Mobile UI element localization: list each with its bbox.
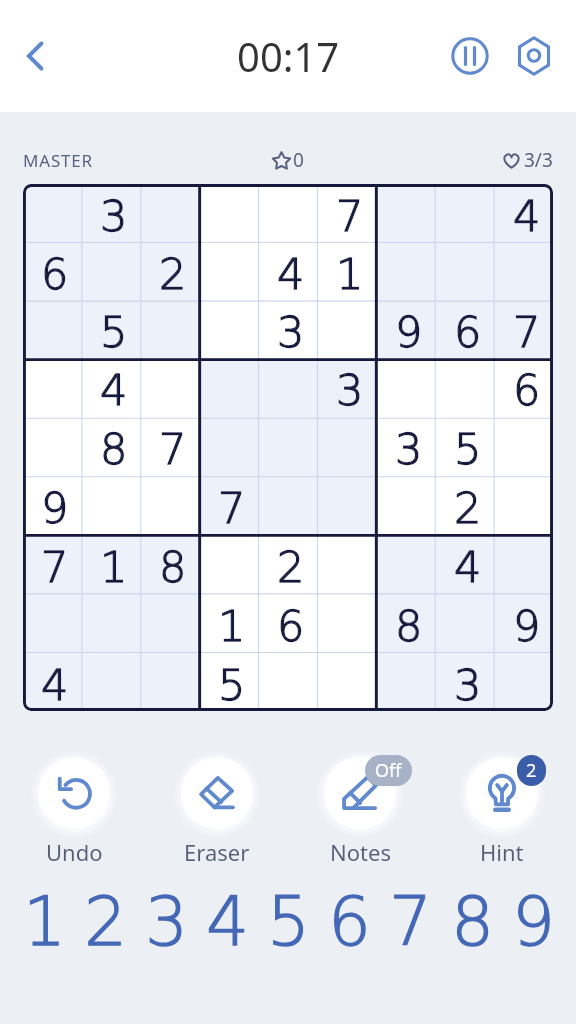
- button[interactable]: 7: [199, 475, 258, 534]
- button[interactable]: [81, 242, 140, 300]
- button[interactable]: [81, 593, 140, 652]
- button[interactable]: Back: [7, 28, 63, 84]
- button[interactable]: [140, 593, 199, 652]
- button[interactable]: 5: [435, 416, 494, 475]
- button[interactable]: [23, 416, 81, 475]
- button[interactable]: 6: [494, 358, 553, 416]
- staticText: 5: [454, 424, 482, 474]
- button[interactable]: 3: [435, 652, 494, 711]
- button[interactable]: 4: [197, 880, 257, 964]
- button[interactable]: [317, 475, 376, 534]
- button[interactable]: 8: [442, 880, 502, 964]
- button[interactable]: [494, 534, 553, 593]
- button[interactable]: [199, 184, 258, 242]
- button[interactable]: [376, 358, 435, 416]
- button[interactable]: [376, 534, 435, 593]
- button[interactable]: 2: [435, 475, 494, 534]
- button[interactable]: [140, 652, 199, 711]
- button[interactable]: 1: [81, 534, 140, 593]
- button[interactable]: 7: [317, 184, 376, 242]
- button[interactable]: [258, 358, 317, 416]
- button[interactable]: Eraser: [162, 755, 272, 867]
- button[interactable]: [435, 184, 494, 242]
- button[interactable]: 6: [23, 242, 81, 300]
- button[interactable]: Undo: [19, 755, 129, 867]
- button[interactable]: [435, 242, 494, 300]
- button[interactable]: 9: [503, 880, 563, 964]
- button[interactable]: [23, 593, 81, 652]
- button[interactable]: 9: [376, 300, 435, 358]
- button[interactable]: Pause: [445, 31, 495, 81]
- button[interactable]: 4: [81, 358, 140, 416]
- button[interactable]: [494, 242, 553, 300]
- button[interactable]: 7: [380, 880, 440, 964]
- button[interactable]: 4: [23, 652, 81, 711]
- button[interactable]: 3: [376, 416, 435, 475]
- button[interactable]: 5: [199, 652, 258, 711]
- button[interactable]: 6: [319, 880, 379, 964]
- button[interactable]: 5: [258, 880, 318, 964]
- button[interactable]: [258, 416, 317, 475]
- button[interactable]: 1: [317, 242, 376, 300]
- button[interactable]: [23, 300, 81, 358]
- button[interactable]: [140, 184, 199, 242]
- staticText: 2: [277, 542, 305, 592]
- button[interactable]: [140, 358, 199, 416]
- button[interactable]: Off: [305, 755, 415, 867]
- button[interactable]: [23, 184, 81, 242]
- button[interactable]: 4: [258, 242, 317, 300]
- button[interactable]: 2: [258, 534, 317, 593]
- button[interactable]: 6: [258, 593, 317, 652]
- button[interactable]: 9: [494, 593, 553, 652]
- button[interactable]: [199, 300, 258, 358]
- button[interactable]: [199, 358, 258, 416]
- button[interactable]: 6: [435, 300, 494, 358]
- button[interactable]: 8: [81, 416, 140, 475]
- button[interactable]: [258, 652, 317, 711]
- button[interactable]: [317, 593, 376, 652]
- button[interactable]: [494, 416, 553, 475]
- button[interactable]: [81, 652, 140, 711]
- staticText: 3: [395, 424, 423, 474]
- button[interactable]: [376, 184, 435, 242]
- button[interactable]: 1: [199, 593, 258, 652]
- button[interactable]: 7: [140, 416, 199, 475]
- button[interactable]: [376, 475, 435, 534]
- button[interactable]: 3: [258, 300, 317, 358]
- button[interactable]: 3: [81, 184, 140, 242]
- button[interactable]: [199, 416, 258, 475]
- button[interactable]: [376, 652, 435, 711]
- button[interactable]: 8: [140, 534, 199, 593]
- button[interactable]: 8: [376, 593, 435, 652]
- button[interactable]: 7: [494, 300, 553, 358]
- button[interactable]: [258, 184, 317, 242]
- button[interactable]: [258, 475, 317, 534]
- button[interactable]: Settings: [509, 31, 559, 81]
- button[interactable]: 3: [317, 358, 376, 416]
- button[interactable]: [199, 534, 258, 593]
- button[interactable]: 2: [140, 242, 199, 300]
- button[interactable]: [435, 593, 494, 652]
- button[interactable]: [494, 652, 553, 711]
- button[interactable]: 2: [75, 880, 135, 964]
- button[interactable]: [317, 416, 376, 475]
- button[interactable]: [317, 652, 376, 711]
- button[interactable]: [140, 475, 199, 534]
- button[interactable]: [81, 475, 140, 534]
- button[interactable]: [199, 242, 258, 300]
- button[interactable]: [317, 534, 376, 593]
- button[interactable]: [140, 300, 199, 358]
- button[interactable]: 5: [81, 300, 140, 358]
- button[interactable]: 1: [14, 880, 74, 964]
- button[interactable]: 3: [136, 880, 196, 964]
- button[interactable]: 7: [23, 534, 81, 593]
- button[interactable]: 9: [23, 475, 81, 534]
- button[interactable]: [23, 358, 81, 416]
- button[interactable]: [317, 300, 376, 358]
- button[interactable]: 4: [494, 184, 553, 242]
- button[interactable]: [376, 242, 435, 300]
- button[interactable]: 2: [447, 755, 557, 867]
- button[interactable]: 4: [435, 534, 494, 593]
- button[interactable]: [494, 475, 553, 534]
- button[interactable]: [435, 358, 494, 416]
